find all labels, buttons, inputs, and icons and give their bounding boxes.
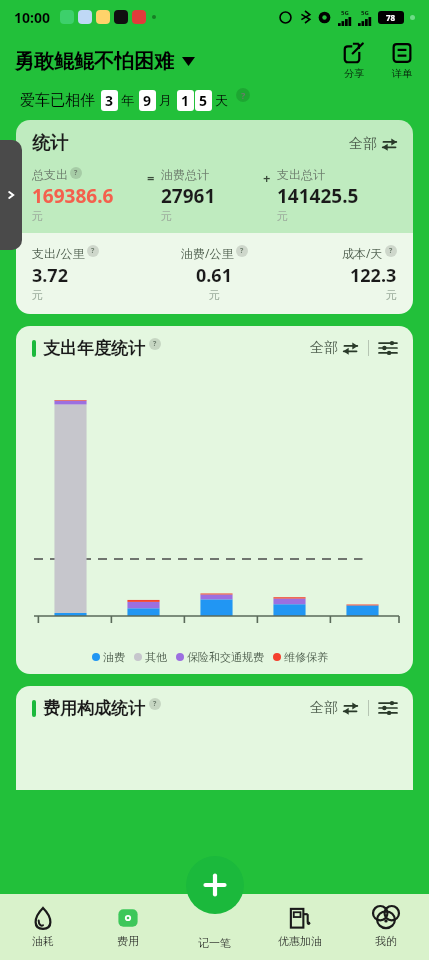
staticText: 支出总计 bbox=[277, 167, 325, 182]
staticText: 维修保养 bbox=[284, 650, 328, 664]
staticText: 3.72 bbox=[32, 263, 68, 288]
staticText: 全部 bbox=[349, 135, 377, 153]
button[interactable]: 油耗 bbox=[0, 894, 85, 960]
staticText: 169386.6 bbox=[32, 183, 114, 209]
staticText: 爱车已相伴 bbox=[20, 91, 95, 110]
staticText: 支出/公里 bbox=[32, 245, 85, 261]
staticText: 元 bbox=[32, 288, 43, 302]
button[interactable]: Add record bbox=[186, 856, 244, 914]
button[interactable]: Help bbox=[385, 245, 397, 257]
staticText: 27961 bbox=[161, 183, 216, 209]
staticText: 月 bbox=[159, 92, 172, 108]
button[interactable]: Help bbox=[236, 245, 248, 257]
staticText: 详单 bbox=[392, 67, 412, 80]
button[interactable]: Help bbox=[87, 245, 99, 257]
staticText: 油费总计 bbox=[161, 167, 209, 182]
staticText: 成本/天 bbox=[342, 245, 383, 261]
button[interactable]: 优惠加油 bbox=[257, 894, 343, 960]
staticText: 油费 bbox=[103, 650, 125, 664]
button[interactable]: 分享 bbox=[341, 40, 367, 82]
staticText: = bbox=[147, 169, 155, 187]
button[interactable]: 全部 bbox=[310, 699, 358, 717]
staticText: + bbox=[263, 169, 271, 187]
button[interactable]: 我的 bbox=[343, 894, 429, 960]
button[interactable]: 成本/天 bbox=[275, 245, 397, 302]
staticText: 支出年度统计 bbox=[43, 338, 145, 359]
button[interactable]: 油费总计 bbox=[161, 167, 263, 223]
staticText: 3 bbox=[105, 91, 114, 110]
staticText: 费用构成统计 bbox=[43, 698, 145, 719]
button[interactable]: Help bbox=[149, 698, 161, 710]
staticText: 全部 bbox=[310, 339, 338, 357]
staticText: 总支出 bbox=[32, 167, 68, 182]
staticText: ? bbox=[91, 246, 95, 256]
staticText: 分享 bbox=[344, 67, 364, 80]
button[interactable]: 勇敢鲲鲲不怕困难 bbox=[14, 49, 195, 74]
button[interactable]: 油费/公里 bbox=[153, 245, 275, 302]
staticText: 勇敢鲲鲲不怕困难 bbox=[14, 49, 174, 74]
staticText: 元 bbox=[161, 209, 172, 223]
staticText: 优惠加油 bbox=[278, 934, 322, 948]
button[interactable]: Help bbox=[149, 338, 161, 350]
staticText: 其他 bbox=[145, 650, 167, 664]
staticText: 10:00 bbox=[14, 8, 50, 27]
button[interactable]: 详单 bbox=[389, 40, 415, 82]
staticText: 5 bbox=[199, 91, 208, 110]
staticText: ? bbox=[240, 246, 244, 256]
button[interactable]: Help bbox=[70, 167, 82, 179]
staticText: 油耗 bbox=[32, 934, 54, 948]
button[interactable]: Open drawer bbox=[0, 140, 22, 250]
staticText: 油费/公里 bbox=[181, 245, 234, 261]
staticText: 元 bbox=[32, 209, 43, 223]
staticText: 5G bbox=[341, 9, 349, 17]
staticText: 78 bbox=[386, 12, 396, 23]
staticText: 年 bbox=[121, 92, 134, 108]
staticText: 记一笔 bbox=[198, 936, 231, 950]
button[interactable]: 费用 bbox=[85, 894, 171, 960]
staticText: 统计 bbox=[32, 132, 68, 155]
button[interactable]: 支出/公里 bbox=[32, 245, 153, 302]
staticText: 5G bbox=[361, 9, 369, 17]
staticText: ? bbox=[74, 168, 78, 178]
staticText: 141425.5 bbox=[277, 183, 359, 209]
staticText: 我的 bbox=[375, 934, 397, 948]
staticText: ? bbox=[241, 89, 246, 101]
staticText: 元 bbox=[386, 288, 397, 302]
staticText: 天 bbox=[215, 92, 228, 108]
button[interactable]: 全部 bbox=[310, 339, 358, 357]
button[interactable]: 全部 bbox=[349, 135, 397, 153]
staticText: 保险和交通规费 bbox=[187, 650, 264, 664]
staticText: 9 bbox=[143, 91, 152, 110]
staticText: 0.61 bbox=[196, 263, 232, 288]
staticText: ? bbox=[153, 699, 157, 709]
button[interactable]: Filter bbox=[379, 701, 397, 715]
button[interactable]: 支出总计 bbox=[277, 167, 397, 223]
staticText: 122.3 bbox=[350, 263, 397, 288]
staticText: 全部 bbox=[310, 699, 338, 717]
button[interactable]: Help bbox=[236, 88, 250, 102]
staticText: 费用 bbox=[117, 934, 139, 948]
button[interactable]: Filter bbox=[379, 341, 397, 355]
staticText: 元 bbox=[277, 209, 288, 223]
button[interactable]: 总支出 bbox=[32, 167, 147, 223]
staticText: 元 bbox=[209, 288, 220, 302]
staticText: ? bbox=[389, 246, 393, 256]
staticText: ? bbox=[153, 339, 157, 349]
staticText: 1 bbox=[181, 91, 190, 110]
